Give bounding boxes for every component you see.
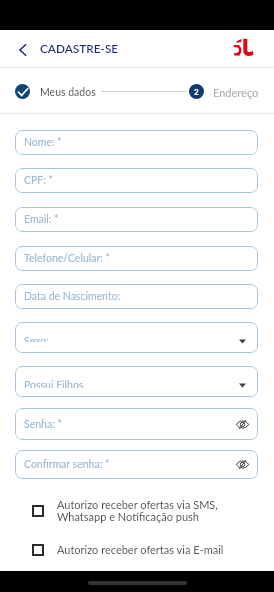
staticText: Autorizo receber ofertas via E-mail: [57, 543, 224, 556]
staticText: 2: [194, 87, 199, 97]
button[interactable]: Data de Nascimento:: [15, 284, 258, 309]
staticText: Telefone/Celular: *: [24, 252, 111, 265]
button[interactable]: Possui Filhos: [15, 366, 258, 397]
staticText: Nome: *: [24, 136, 62, 149]
staticText: Senha: *: [24, 418, 62, 431]
button[interactable]: Telefone/Celular: *: [15, 246, 258, 271]
button[interactable]: Voltar: [11, 38, 34, 61]
button[interactable]: Nome: *: [15, 130, 258, 155]
staticText: Email: *: [24, 213, 59, 226]
staticText: Possui Filhos: [24, 379, 84, 388]
button[interactable]: CPF: *: [15, 168, 258, 193]
staticText: Data de Nascimento:: [24, 290, 121, 303]
button[interactable]: Email: *: [15, 207, 258, 232]
button[interactable]: Meus dados concluido: [15, 84, 30, 99]
button[interactable]: Autorizo receber ofertas via E-mail: [32, 543, 232, 556]
staticText: Autorizo receber ofertas via SMS, Whatsa…: [57, 498, 218, 523]
other: Logo: [233, 38, 254, 56]
button[interactable]: 2: [189, 84, 204, 99]
button[interactable]: Senha: *: [15, 408, 258, 440]
other: Mostrar senha: [236, 418, 249, 431]
staticText: Endereço: [213, 86, 259, 99]
staticText: Confirmar senha: *: [24, 458, 110, 471]
other: Abrir: [239, 383, 246, 388]
button[interactable]: Sexo:: [15, 322, 258, 353]
staticText: Meus dados: [40, 86, 96, 99]
button[interactable]: Autorizo receber ofertas via SMS, Whatsa…: [32, 498, 232, 523]
staticText: Sexo:: [24, 335, 49, 342]
other: Mostrar senha: [236, 458, 249, 471]
button[interactable]: Confirmar senha: *: [15, 450, 258, 479]
staticText: CADASTRE-SE: [40, 41, 119, 55]
other: Abrir: [239, 339, 246, 344]
staticText: CPF: *: [24, 174, 53, 187]
